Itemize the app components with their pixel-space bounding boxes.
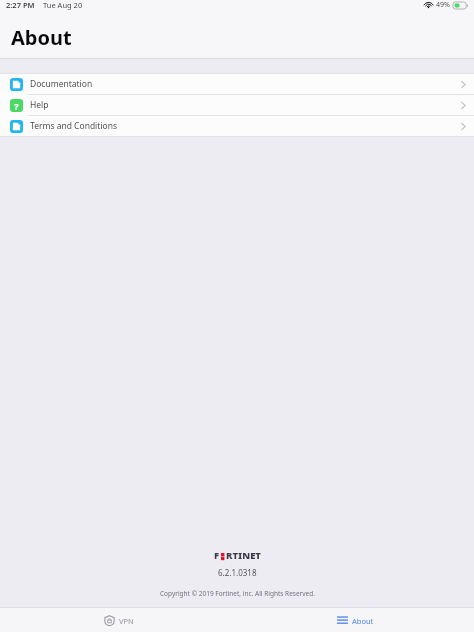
staticText: RTINET <box>226 549 261 562</box>
staticText: Terms and Conditions <box>30 120 118 132</box>
other: Wi-Fi <box>424 1 433 9</box>
button[interactable]: Terms and Conditions <box>0 116 474 136</box>
other: Battery 49% <box>453 2 468 9</box>
staticText: ? <box>14 100 19 112</box>
staticText: About <box>11 24 72 51</box>
staticText: Copyright © 2019 Fortinet, inc. All Righ… <box>160 589 315 598</box>
button[interactable]: Documentation <box>0 74 474 94</box>
staticText: Documentation <box>30 78 93 90</box>
staticText: 49% <box>436 0 450 10</box>
staticText: VPN <box>119 616 134 626</box>
staticText: 6.2.1.0318 <box>218 567 257 578</box>
staticText: Tue Aug 20 <box>43 0 83 10</box>
staticText: 2:27 PM <box>6 0 35 10</box>
button[interactable]: About <box>327 612 384 629</box>
staticText: About <box>352 616 374 626</box>
staticText: F <box>214 549 220 562</box>
button[interactable]: VPN <box>94 612 144 629</box>
button[interactable]: ? <box>0 95 474 115</box>
staticText: Help <box>30 99 49 111</box>
